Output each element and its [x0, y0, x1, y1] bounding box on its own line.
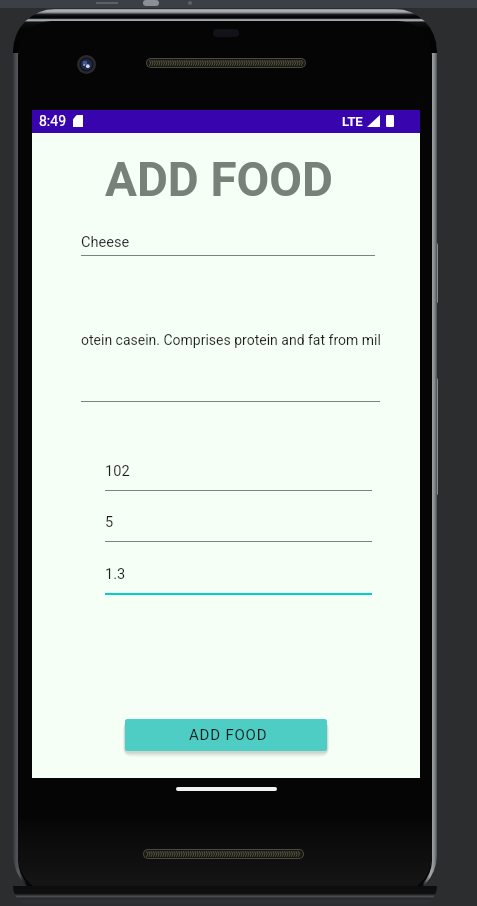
staticText: LTE [342, 114, 363, 129]
button[interactable]: ADD FOOD [125, 719, 327, 751]
staticText: ADD FOOD [189, 726, 268, 744]
staticText: Cheese [81, 233, 375, 250]
staticText: 8:49 [39, 113, 66, 129]
staticText: ADD FOOD [25, 152, 413, 208]
button[interactable] [105, 561, 372, 594]
button[interactable] [105, 509, 372, 542]
button[interactable] [81, 229, 375, 256]
button[interactable] [105, 458, 372, 491]
staticText: 102 [105, 462, 372, 479]
button[interactable] [81, 328, 386, 402]
staticText: 5 [105, 513, 372, 530]
staticText: otein casein. Comprises protein and fat … [81, 332, 386, 348]
staticText: 1.3 [105, 565, 372, 582]
